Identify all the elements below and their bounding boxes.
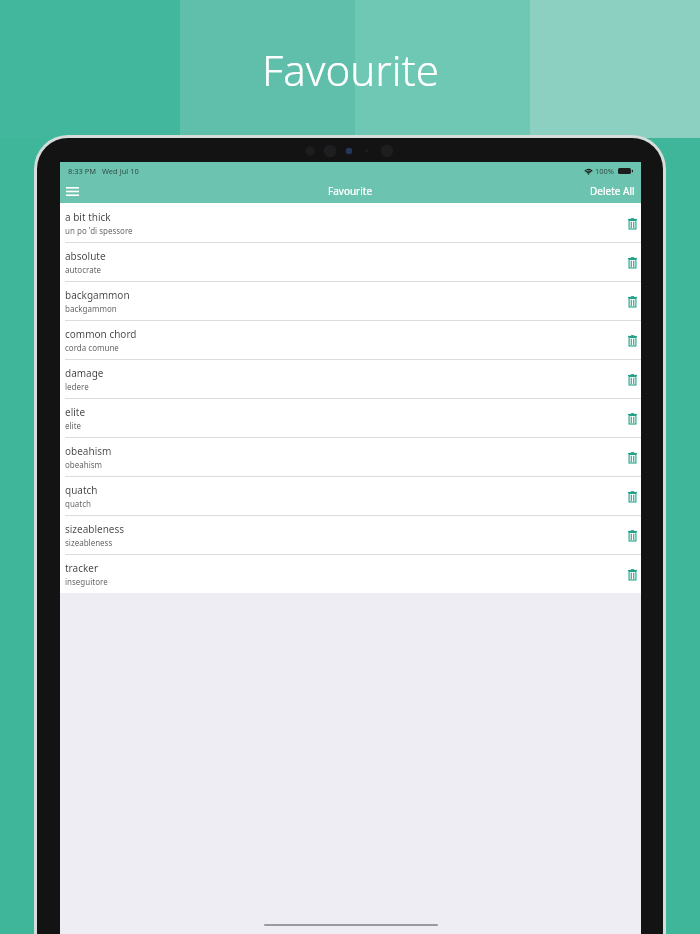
button[interactable]: damage (60, 359, 641, 398)
staticText: damage (65, 366, 104, 380)
staticText: Favourite (262, 41, 439, 98)
button[interactable]: Delete absolute (623, 253, 641, 271)
staticText: sizeableness (65, 537, 113, 548)
button[interactable]: a bit thick (60, 203, 641, 242)
button[interactable]: elite (60, 398, 641, 437)
staticText: tracker (65, 561, 99, 575)
button[interactable]: Delete tracker (623, 565, 641, 583)
staticText: Favourite (328, 184, 373, 198)
staticText: elite (65, 405, 86, 419)
staticText: 100% (595, 166, 615, 176)
button[interactable]: Delete sizeableness (623, 526, 641, 544)
staticText: common chord (65, 327, 137, 341)
button[interactable]: obeahism (60, 437, 641, 476)
staticText: corda comune (65, 342, 119, 353)
button[interactable]: absolute (60, 242, 641, 281)
staticText: autocrate (65, 264, 102, 275)
staticText: a bit thick (65, 210, 111, 224)
staticText: backgammon (65, 288, 130, 302)
button[interactable]: Open navigation menu (60, 179, 84, 203)
button[interactable]: tracker (60, 554, 641, 593)
button[interactable]: quatch (60, 476, 641, 515)
button[interactable]: backgammon (60, 281, 641, 320)
staticText: quatch (65, 483, 98, 497)
staticText: Delete All (590, 184, 635, 198)
staticText: backgammon (65, 303, 117, 314)
staticText: sizeableness (65, 522, 125, 536)
staticText: absolute (65, 249, 106, 263)
staticText: ledere (65, 381, 89, 392)
button[interactable]: Delete backgammon (623, 292, 641, 310)
staticText: quatch (65, 498, 92, 509)
button[interactable]: Delete elite (623, 409, 641, 427)
button[interactable]: Delete obeahism (623, 448, 641, 466)
button[interactable]: Delete damage (623, 370, 641, 388)
button[interactable]: Delete quatch (623, 487, 641, 505)
staticText: obeahism (65, 459, 103, 470)
button[interactable]: Delete a bit thick (623, 214, 641, 232)
button[interactable]: Delete All (584, 180, 641, 202)
button[interactable]: common chord (60, 320, 641, 359)
button[interactable]: Delete common chord (623, 331, 641, 349)
staticText: elite (65, 420, 82, 431)
staticText: obeahism (65, 444, 112, 458)
staticText: inseguitore (65, 576, 108, 587)
button[interactable]: sizeableness (60, 515, 641, 554)
staticText: 8:33 PM Wed Jul 10 (68, 166, 139, 176)
staticText: un po 'di spessore (65, 225, 133, 236)
